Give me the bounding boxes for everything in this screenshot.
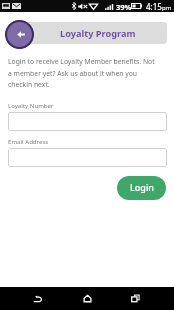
button[interactable]: Recent apps (116, 287, 154, 310)
staticText: 4:15 (146, 1, 162, 12)
button[interactable] (8, 148, 167, 167)
staticText: Loyalty Number (8, 101, 54, 109)
staticText: Email Address (8, 137, 49, 145)
button[interactable]: Back (19, 287, 57, 310)
button[interactable] (8, 112, 167, 131)
staticText: Loyalty Program (60, 27, 136, 40)
staticText: Login (130, 181, 154, 193)
button[interactable]: Back (5, 20, 34, 49)
staticText: pm (162, 4, 172, 12)
staticText: 39% (116, 2, 132, 12)
button[interactable]: Home (68, 287, 106, 310)
button[interactable]: Login (117, 176, 166, 200)
staticText: Login to receive Loyalty Member benefits… (8, 57, 158, 89)
